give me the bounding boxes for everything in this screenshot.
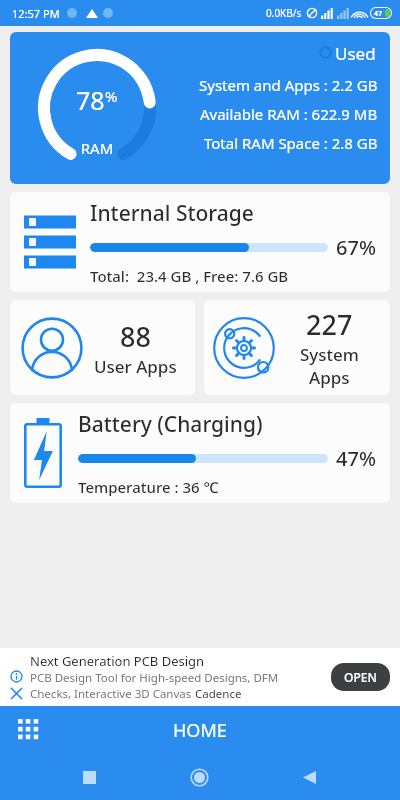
staticText: HOME bbox=[173, 718, 227, 743]
staticText: System and Apps : 2.2 GB bbox=[199, 75, 378, 95]
staticText: 67% bbox=[336, 234, 376, 261]
staticText: Total RAM Space : 2.8 GB bbox=[204, 133, 378, 153]
staticText: 47 bbox=[374, 9, 383, 17]
staticText: System bbox=[300, 343, 359, 366]
staticText: Available RAM : 622.9 MB bbox=[200, 104, 378, 124]
staticText: 47% bbox=[336, 445, 376, 472]
button[interactable]: OPEN bbox=[331, 663, 390, 691]
other: Ad info bbox=[10, 670, 23, 683]
staticText: Apps bbox=[309, 366, 350, 389]
button[interactable]: Battery (Charging) bbox=[10, 403, 390, 503]
staticText: 88 bbox=[120, 318, 151, 355]
staticText: 0.0KB/s bbox=[266, 6, 302, 20]
staticText: RAM bbox=[38, 138, 156, 158]
staticText: OPEN bbox=[344, 669, 377, 685]
staticText: 12:57 PM bbox=[12, 6, 60, 21]
button[interactable]: Recent apps bbox=[71, 759, 108, 796]
staticText: Next Generation PCB Design bbox=[30, 652, 205, 670]
staticText: Battery (Charging) bbox=[78, 410, 263, 439]
staticText: 227 bbox=[306, 306, 353, 343]
button[interactable]: Apps grid bbox=[10, 711, 48, 749]
button[interactable]: Back bbox=[291, 759, 328, 796]
staticText: Internal Storage bbox=[90, 199, 254, 228]
button[interactable]: Home bbox=[180, 758, 219, 797]
button[interactable]: Internal Storage bbox=[10, 192, 390, 292]
other: Close ad bbox=[10, 687, 23, 700]
staticText: Used bbox=[335, 42, 376, 65]
staticText: Checks, Interactive 3D Canvas bbox=[30, 686, 195, 702]
button[interactable]: Used bbox=[10, 32, 390, 184]
button[interactable]: 88 bbox=[10, 300, 195, 395]
staticText: % bbox=[105, 86, 118, 106]
staticText: Temperature : 36 ℃ bbox=[78, 477, 219, 497]
staticText: Total: 23.4 GB , Free: 7.6 GB bbox=[90, 266, 289, 286]
staticText: PCB Design Tool for High-speed Designs, … bbox=[30, 670, 279, 686]
staticText: User Apps bbox=[94, 355, 177, 378]
button[interactable]: Ad info bbox=[0, 648, 400, 706]
button[interactable]: 227 bbox=[204, 300, 390, 395]
staticText: Cadence bbox=[195, 686, 242, 702]
staticText: 78 bbox=[76, 83, 105, 117]
